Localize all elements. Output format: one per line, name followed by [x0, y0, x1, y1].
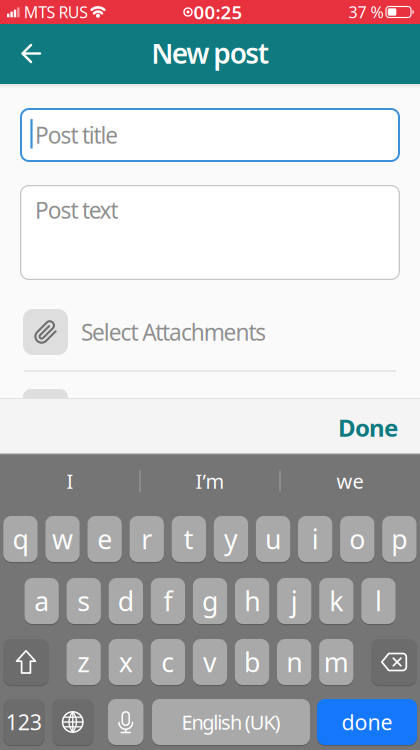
- button[interactable]: I: [2, 455, 138, 507]
- button[interactable]: x: [109, 639, 143, 685]
- button[interactable]: 123: [3, 699, 44, 745]
- button[interactable]: h: [235, 578, 269, 624]
- staticText: r: [141, 521, 152, 557]
- staticText: u: [265, 521, 281, 557]
- button[interactable]: c: [151, 639, 185, 685]
- staticText: Post text: [35, 195, 118, 225]
- button[interactable]: Shift: [3, 639, 49, 685]
- staticText: I’m: [195, 468, 224, 494]
- button[interactable]: r: [130, 516, 164, 562]
- button[interactable]: s: [67, 578, 101, 624]
- staticText: l: [375, 583, 382, 619]
- button[interactable]: z: [66, 639, 101, 685]
- button[interactable]: Next keyboard: [52, 699, 93, 745]
- staticText: e: [97, 521, 112, 557]
- button[interactable]: English (UK): [152, 699, 310, 745]
- staticText: j: [291, 583, 298, 619]
- staticText: I: [66, 468, 73, 494]
- button[interactable]: w: [45, 516, 80, 562]
- button[interactable]: y: [214, 516, 248, 562]
- button[interactable]: p: [382, 516, 416, 562]
- staticText: w: [52, 521, 73, 557]
- button[interactable]: j: [277, 578, 311, 624]
- staticText: m: [324, 644, 349, 680]
- button[interactable]: v: [193, 639, 227, 685]
- staticText: 37 %: [348, 1, 383, 23]
- button[interactable]: f: [151, 578, 185, 624]
- button[interactable]: Dictate: [108, 699, 143, 745]
- staticText: d: [118, 583, 134, 619]
- button[interactable]: e: [87, 516, 122, 562]
- staticText: i: [312, 521, 319, 557]
- staticText: Done: [338, 412, 398, 443]
- button[interactable]: Post title: [20, 108, 400, 162]
- staticText: 00:25: [193, 0, 242, 24]
- staticText: h: [244, 583, 260, 619]
- staticText: k: [329, 583, 343, 619]
- button[interactable]: q: [3, 516, 38, 562]
- button[interactable]: i: [298, 516, 332, 562]
- staticText: English (UK): [181, 709, 280, 735]
- staticText: p: [391, 521, 407, 557]
- staticText: MTS RUS: [24, 1, 88, 23]
- staticText: s: [77, 583, 90, 619]
- staticText: z: [77, 644, 90, 680]
- staticText: a: [34, 583, 49, 619]
- button[interactable]: Post text: [20, 185, 400, 280]
- button[interactable]: I’m: [142, 455, 278, 507]
- button[interactable]: u: [256, 516, 290, 562]
- button[interactable]: t: [172, 516, 206, 562]
- button[interactable]: done: [317, 699, 417, 745]
- staticText: b: [244, 644, 260, 680]
- button[interactable]: o: [340, 516, 374, 562]
- staticText: y: [224, 521, 238, 557]
- button[interactable]: Select Attachments: [23, 309, 420, 355]
- button[interactable]: k: [319, 578, 353, 624]
- staticText: q: [12, 521, 28, 557]
- button[interactable]: d: [109, 578, 143, 624]
- staticText: c: [161, 644, 174, 680]
- button[interactable]: n: [277, 639, 311, 685]
- staticText: done: [341, 708, 392, 736]
- staticText: g: [202, 583, 218, 619]
- button[interactable]: Back: [0, 24, 60, 84]
- staticText: v: [203, 644, 217, 680]
- staticText: o: [349, 521, 365, 557]
- staticText: f: [163, 583, 172, 619]
- staticText: we: [336, 468, 363, 494]
- button[interactable]: Delete: [371, 639, 417, 685]
- staticText: x: [119, 644, 133, 680]
- button[interactable]: m: [319, 639, 353, 685]
- button[interactable]: Done: [323, 399, 413, 456]
- staticText: Select Attachments: [81, 317, 266, 347]
- button[interactable]: b: [235, 639, 269, 685]
- button[interactable]: a: [24, 578, 59, 624]
- staticText: New post: [151, 34, 269, 72]
- button[interactable]: g: [193, 578, 227, 624]
- button[interactable]: l: [361, 578, 396, 624]
- staticText: Post title: [35, 120, 118, 150]
- staticText: 123: [6, 708, 42, 736]
- button[interactable]: we: [282, 455, 418, 507]
- staticText: t: [184, 521, 194, 557]
- staticText: n: [286, 644, 302, 680]
